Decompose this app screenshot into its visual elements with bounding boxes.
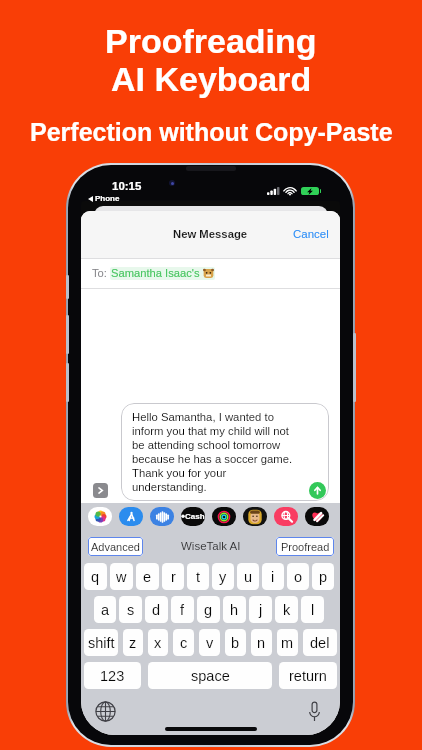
staticText: Phone [95,194,120,203]
button[interactable]: space [148,662,272,689]
staticText: u [244,569,253,585]
button[interactable]: d [145,596,168,623]
button[interactable]: App 1 [88,507,112,526]
staticText: AI Keyboard [111,60,312,98]
button[interactable]: App 2 [119,507,143,526]
button[interactable]: return [279,662,337,689]
button[interactable]: n [251,629,272,656]
button[interactable]: o [287,563,309,590]
button[interactable]: h [223,596,246,623]
button[interactable]: App 7 [274,507,298,526]
staticText: v [206,635,214,651]
staticText: del [310,635,330,651]
staticText: m [281,635,294,651]
button[interactable]: i [262,563,284,590]
button[interactable]: Advanced [88,537,143,556]
staticText: Cancel [293,228,329,241]
button[interactable]: m [277,629,298,656]
staticText: w [116,569,127,585]
button[interactable]: q [84,563,107,590]
button[interactable]: e [136,563,159,590]
staticText: g [204,602,213,618]
button[interactable]: g [197,596,220,623]
staticText: z [129,635,137,651]
staticText: c [180,635,188,651]
staticText: Advanced [91,541,140,553]
staticText: o [294,569,303,585]
button[interactable]: Send [309,482,326,499]
staticText: To: [92,267,107,280]
staticText: 10:15 [112,180,142,193]
staticText: Proofreading [105,22,317,60]
staticText: space [191,668,230,684]
button[interactable]: App 6 [243,507,267,526]
button[interactable]: Cancel [285,224,340,245]
button[interactable]: shift [84,629,118,656]
staticText: Hello Samantha, I wanted to inform you t… [132,411,293,493]
button[interactable]: b [225,629,246,656]
staticText: t [196,569,201,585]
button[interactable]: Proofread [276,537,334,556]
staticText: d [152,602,161,618]
staticText: k [283,602,291,618]
staticText: y [219,569,227,585]
button[interactable]: To: [92,259,340,288]
staticText: a [101,602,110,618]
staticText: WiseTalk AI [181,540,241,553]
button[interactable]: r [162,563,184,590]
staticText: Proofread [281,541,330,553]
staticText: return [289,668,327,684]
button[interactable]: 123 [84,662,141,689]
staticText: e [143,569,152,585]
staticText: q [91,569,100,585]
staticText: x [154,635,162,651]
button[interactable]: f [171,596,194,623]
button[interactable]: k [275,596,298,623]
button[interactable]: s [119,596,142,623]
staticText: l [311,602,315,618]
button[interactable]: More apps [93,483,108,498]
staticText: Samantha Isaac's [111,267,203,280]
staticText: r [171,569,176,585]
button[interactable]: App 8 [305,507,329,526]
button[interactable]: j [249,596,272,623]
button[interactable]: l [301,596,324,623]
button[interactable]: del [303,629,337,656]
staticText: Cash [185,512,205,521]
button[interactable]: c [173,629,194,656]
button[interactable]: z [123,629,143,656]
staticText: i [271,569,275,585]
button[interactable]: y [212,563,234,590]
staticText: shift [88,635,115,651]
staticText: n [257,635,266,651]
button[interactable]: u [237,563,259,590]
button[interactable]: App 4 [181,507,205,526]
staticText: p [319,569,328,585]
button[interactable]: a [94,596,116,623]
button[interactable]: x [148,629,168,656]
button[interactable]: v [199,629,220,656]
button[interactable]: App 5 [212,507,236,526]
button[interactable]: p [312,563,334,590]
staticText: Perfection without Copy-Paste [30,118,393,146]
staticText: New Message [173,228,248,241]
button[interactable]: Dictate [307,701,322,722]
button[interactable]: Change keyboard [95,701,116,722]
staticText: b [231,635,240,651]
staticText: h [230,602,239,618]
button[interactable]: w [110,563,133,590]
staticText: f [180,602,185,618]
staticText: 123 [100,668,125,684]
button[interactable]: t [187,563,209,590]
staticText: s [127,602,135,618]
staticText: j [259,602,263,618]
button[interactable]: App 3 [150,507,174,526]
